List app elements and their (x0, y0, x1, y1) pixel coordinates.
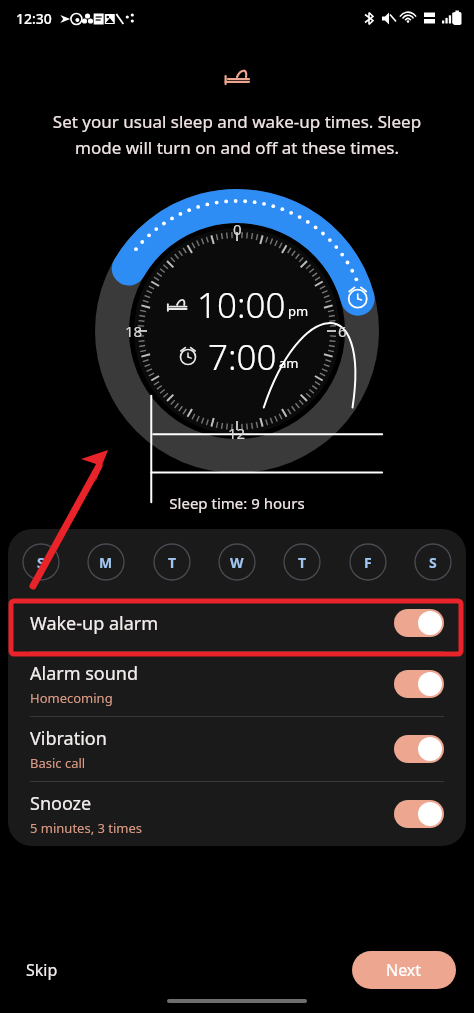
button[interactable]: Wake-up alarm (8, 595, 466, 652)
button[interactable]: Toggle on (394, 609, 444, 637)
button[interactable]: T (283, 543, 321, 581)
button[interactable]: M (87, 543, 125, 581)
button[interactable]: Snooze (8, 782, 466, 846)
staticText: 12:30 (16, 9, 52, 28)
staticText: Wake-up alarm (30, 611, 159, 636)
button[interactable]: F (349, 543, 387, 581)
staticText: Next (386, 959, 422, 981)
button[interactable]: S (22, 543, 60, 581)
staticText: Alarm sound (30, 661, 139, 686)
staticText: T (168, 553, 177, 572)
staticText: pm (288, 302, 309, 320)
staticText: Sleep time: 9 hours (0, 493, 474, 513)
staticText: Set your usual sleep and wake-up times. … (22, 110, 452, 159)
staticText: Vibration (30, 726, 107, 751)
staticText: S (37, 553, 45, 572)
staticText: 0 (233, 219, 242, 239)
staticText: Homecoming (30, 689, 113, 707)
staticText: Basic call (30, 754, 86, 772)
staticText: 10:00 (197, 281, 286, 329)
button[interactable]: Toggle on (394, 800, 444, 828)
staticText: T (298, 553, 307, 572)
button[interactable]: W (218, 543, 256, 581)
staticText: 5 minutes, 3 times (30, 819, 143, 837)
staticText: Skip (26, 959, 58, 981)
staticText: Snooze (30, 791, 92, 816)
button[interactable]: Next (352, 951, 456, 989)
button[interactable]: Vibration (8, 717, 466, 782)
staticText: S (429, 553, 437, 572)
staticText: W (230, 553, 244, 572)
button[interactable]: T (153, 543, 191, 581)
button[interactable]: Skip (14, 951, 70, 989)
staticText: am (279, 354, 299, 372)
staticText: 7:00 (208, 333, 277, 381)
staticText: 18 (125, 321, 143, 341)
staticText: F (364, 553, 372, 572)
button[interactable]: Alarm sound (8, 652, 466, 717)
staticText: M (99, 553, 113, 572)
button[interactable]: S (414, 543, 452, 581)
staticText: 6 (338, 321, 347, 341)
button[interactable]: Toggle on (394, 670, 444, 698)
button[interactable]: Toggle on (394, 735, 444, 763)
staticText: 12 (228, 423, 246, 443)
